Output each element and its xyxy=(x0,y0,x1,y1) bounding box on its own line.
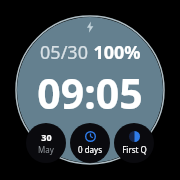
staticText: 09:05 xyxy=(37,65,143,121)
staticText: 100% xyxy=(93,40,141,65)
button[interactable]: Timer, 0 days xyxy=(70,123,110,163)
staticText: 05/30 xyxy=(40,40,88,65)
other: Charging xyxy=(84,21,96,33)
button[interactable]: Moon phase, First Quarter xyxy=(114,123,154,163)
staticText: 0 days xyxy=(78,144,102,155)
staticText: First Q xyxy=(122,144,147,155)
button[interactable]: Date, 30 May xyxy=(26,123,66,163)
staticText: 30 xyxy=(41,131,52,143)
staticText: May xyxy=(38,144,54,155)
